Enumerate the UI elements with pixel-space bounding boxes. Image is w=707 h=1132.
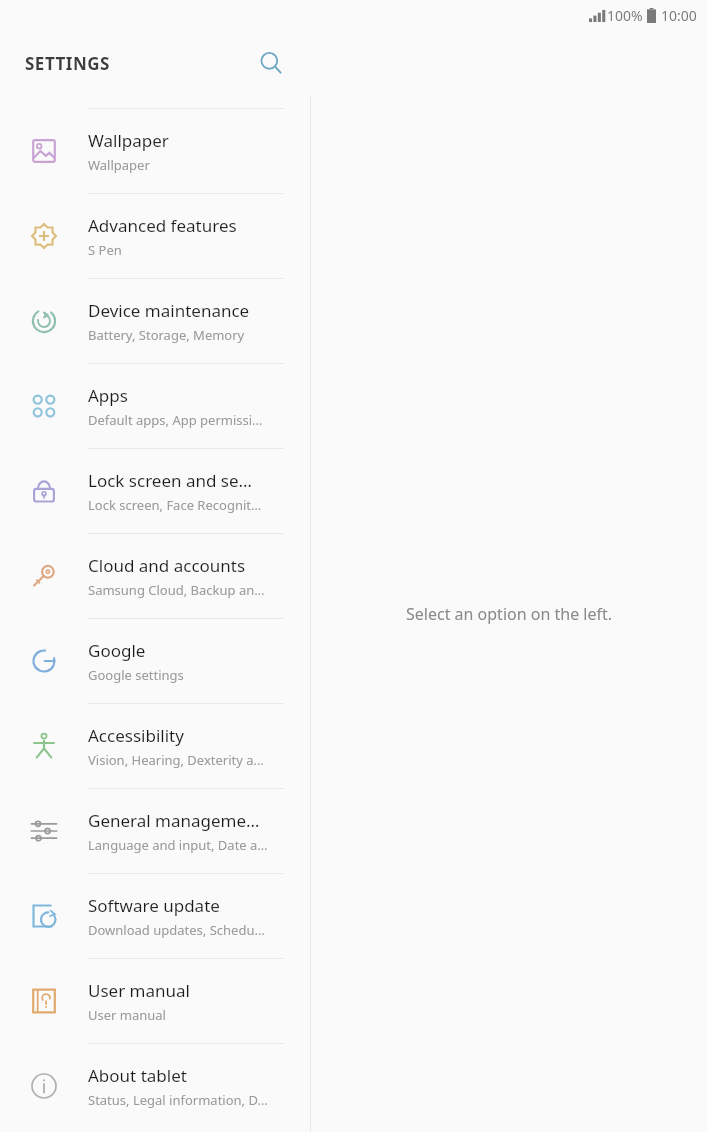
staticText: S Pen — [88, 241, 122, 259]
staticText: Wallpaper — [88, 129, 169, 152]
staticText: Status, Legal information, D… — [88, 1091, 268, 1109]
button[interactable]: Device maintenance — [0, 279, 310, 363]
staticText: About tablet — [88, 1064, 187, 1087]
staticText: 10:00 — [661, 6, 697, 25]
staticText: User manual — [88, 1006, 166, 1024]
staticText: Default apps, App permissi… — [88, 411, 263, 429]
button[interactable]: Software update — [0, 874, 310, 958]
staticText: General manageme… — [88, 809, 260, 832]
staticText: Lock screen, Face Recognit… — [88, 496, 262, 514]
button[interactable]: Google — [0, 619, 310, 703]
staticText: Device maintenance — [88, 299, 250, 322]
button[interactable]: Lock screen and se… — [0, 449, 310, 533]
button[interactable]: Accessibility — [0, 704, 310, 788]
button[interactable]: Apps — [0, 364, 310, 448]
staticText: Advanced features — [88, 214, 237, 237]
staticText: Vision, Hearing, Dexterity a… — [88, 751, 264, 769]
button[interactable]: About tablet — [0, 1044, 310, 1128]
button[interactable]: Advanced features — [0, 194, 310, 278]
staticText: 100% — [607, 6, 643, 25]
staticText: Google — [88, 639, 146, 662]
button[interactable]: User manual — [0, 959, 310, 1043]
button[interactable]: Search — [248, 40, 294, 86]
staticText: Google settings — [88, 666, 184, 684]
staticText: Battery, Storage, Memory — [88, 326, 245, 344]
staticText: SETTINGS — [25, 52, 110, 75]
staticText: Download updates, Schedu… — [88, 921, 265, 939]
staticText: Language and input, Date a… — [88, 836, 268, 854]
staticText: Select an option on the left. — [406, 603, 613, 625]
staticText: Wallpaper — [88, 156, 150, 174]
button[interactable]: Wallpaper — [0, 109, 310, 193]
staticText: Apps — [88, 384, 128, 407]
button[interactable]: Cloud and accounts — [0, 534, 310, 618]
staticText: Cloud and accounts — [88, 554, 246, 577]
staticText: Accessibility — [88, 724, 184, 747]
staticText: Samsung Cloud, Backup an… — [88, 581, 265, 599]
button[interactable]: General manageme… — [0, 789, 310, 873]
staticText: User manual — [88, 979, 190, 1002]
staticText: Lock screen and se… — [88, 469, 253, 492]
staticText: Software update — [88, 894, 220, 917]
